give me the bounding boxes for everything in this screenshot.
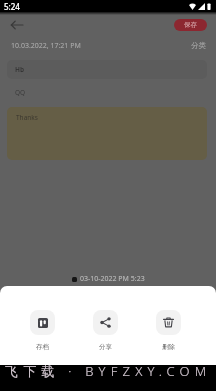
staticText: 删除 bbox=[162, 343, 175, 351]
button[interactable]: Back bbox=[7, 16, 25, 34]
staticText: 03-10-2022 PM 5:23 bbox=[80, 274, 145, 284]
staticText: 分享 bbox=[99, 343, 112, 351]
button[interactable]: 删除 bbox=[156, 310, 181, 351]
staticText: Thanks bbox=[16, 113, 38, 122]
staticText: 飞下载 · BYFZXY.COM bbox=[5, 362, 212, 380]
staticText: 保存 bbox=[184, 21, 197, 29]
staticText: 5:24 bbox=[4, 1, 20, 12]
staticText: QQ bbox=[15, 88, 26, 97]
staticText: Hb bbox=[15, 65, 25, 74]
staticText: 10.03.2022, 17:21 PM bbox=[11, 41, 81, 51]
button[interactable]: 分类 bbox=[191, 41, 206, 50]
button[interactable]: 存档 bbox=[30, 310, 55, 351]
button[interactable]: 分享 bbox=[93, 310, 118, 351]
staticText: 分类 bbox=[191, 41, 206, 50]
staticText: 存档 bbox=[36, 343, 49, 351]
button[interactable]: QQ bbox=[15, 88, 26, 97]
button[interactable]: 保存 bbox=[174, 19, 207, 31]
